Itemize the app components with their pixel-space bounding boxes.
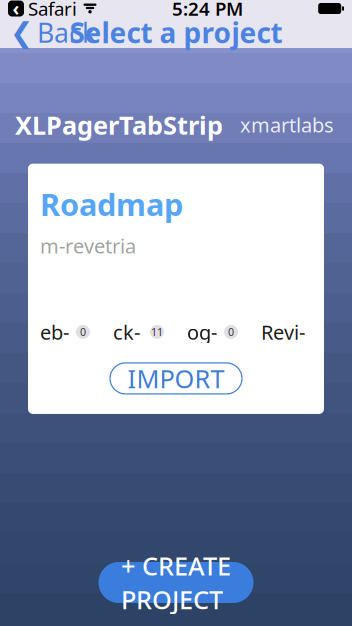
staticText: + CREATE PROJECT xyxy=(121,549,231,616)
button[interactable]: + CREATE PROJECT xyxy=(98,562,253,603)
button[interactable]: In progress xyxy=(187,265,238,398)
staticText: Code Review xyxy=(261,292,309,372)
staticText: Icebox xyxy=(40,292,69,372)
staticText: Backlog xyxy=(113,292,143,372)
staticText: Roadmap xyxy=(40,184,183,224)
staticText: Select a project xyxy=(69,14,282,51)
button[interactable]: Code Review xyxy=(261,292,309,372)
staticText: 5:24 PM xyxy=(172,0,243,21)
staticText: 0 xyxy=(228,325,234,339)
staticText: Back xyxy=(37,15,96,50)
staticText: ‹ xyxy=(12,0,19,21)
staticText: XLPagerTabStrip xyxy=(15,108,223,142)
button[interactable]: Backlog xyxy=(113,292,164,372)
staticText: In progress xyxy=(187,265,217,398)
staticText: 0 xyxy=(80,325,86,339)
staticText: IMPORT xyxy=(127,362,224,395)
staticText: 11 xyxy=(151,325,163,339)
button[interactable]: IMPORT xyxy=(110,363,242,394)
button[interactable]: ❮ xyxy=(0,9,96,56)
staticText: ❮ xyxy=(10,17,33,48)
staticText: xmartlabs xyxy=(240,111,334,138)
button[interactable]: Icebox xyxy=(40,292,90,372)
staticText: Safari xyxy=(28,0,77,21)
staticText: m-revetria xyxy=(40,232,136,259)
